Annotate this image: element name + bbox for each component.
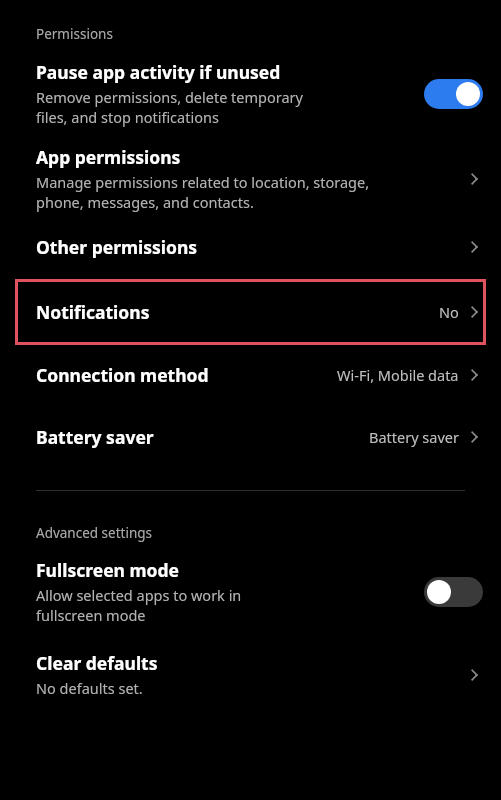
button[interactable]: App permissions [0, 145, 501, 213]
staticText: Battery saver [36, 425, 154, 449]
button[interactable]: Fullscreen mode [0, 558, 501, 626]
staticText: No [439, 302, 459, 322]
button[interactable]: Clear defaults [0, 651, 501, 698]
staticText: Advanced settings [36, 524, 153, 542]
staticText: Fullscreen mode [36, 558, 180, 582]
staticText: Connection method [36, 363, 209, 387]
staticText: Wi-Fi, Mobile data [337, 365, 459, 385]
staticText: Remove permissions, delete temporary fil… [36, 87, 303, 128]
button[interactable] [424, 577, 483, 607]
staticText: Notifications [36, 300, 439, 324]
staticText: Pause app activity if unused [36, 60, 281, 84]
staticText: Permissions [36, 25, 113, 43]
button[interactable]: Pause app activity if unused [0, 60, 501, 128]
staticText: Clear defaults [36, 651, 158, 675]
staticText: App permissions [36, 145, 181, 169]
staticText: Manage permissions related to location, … [36, 172, 370, 213]
button[interactable]: Battery saver [0, 425, 501, 449]
staticText: Allow selected apps to work in fullscree… [36, 585, 242, 626]
button[interactable] [424, 79, 483, 109]
button[interactable]: Connection method [0, 363, 501, 387]
button[interactable]: Other permissions [0, 235, 501, 259]
staticText: Battery saver [369, 427, 459, 447]
button[interactable]: Notifications [15, 279, 486, 345]
staticText: Other permissions [36, 235, 198, 259]
staticText: No defaults set. [36, 678, 143, 698]
